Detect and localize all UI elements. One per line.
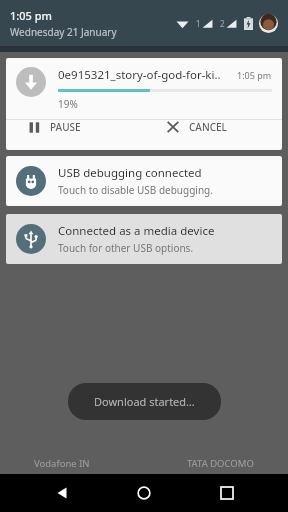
button[interactable]: Download started… xyxy=(68,383,221,420)
button[interactable]: Back xyxy=(41,474,83,512)
staticText: CANCEL xyxy=(189,120,227,134)
button[interactable]: Home xyxy=(123,474,165,512)
button[interactable]: Connected as a media device xyxy=(6,214,282,264)
staticText: 19% xyxy=(58,97,78,111)
staticText: 1:05 pm xyxy=(10,8,52,23)
staticText: Download started… xyxy=(94,394,195,409)
staticText: PAUSE xyxy=(50,120,81,134)
staticText: 1:05 pm xyxy=(237,69,272,81)
button[interactable]: 0e915321_story-of-god-for-ki.. xyxy=(6,58,282,150)
staticText: Touch to disable USB debugging. xyxy=(58,183,213,197)
staticText: Touch for other USB options. xyxy=(58,241,194,255)
button[interactable]: USB debugging connected xyxy=(6,156,282,206)
staticText: 0e915321_story-of-god-for-ki.. xyxy=(58,67,231,83)
button[interactable]: CANCEL xyxy=(144,120,282,134)
staticText: USB debugging connected xyxy=(58,165,202,181)
button[interactable]: PAUSE xyxy=(6,120,144,134)
staticText: TATA DOCOMO xyxy=(187,457,254,470)
staticText: 1 xyxy=(196,18,201,29)
staticText: Wednesday 21 January xyxy=(10,25,117,39)
staticText: 2 xyxy=(220,18,225,29)
button[interactable]: Recent apps xyxy=(206,474,248,512)
staticText: Vodafone IN xyxy=(34,457,90,470)
staticText: Connected as a media device xyxy=(58,223,215,239)
